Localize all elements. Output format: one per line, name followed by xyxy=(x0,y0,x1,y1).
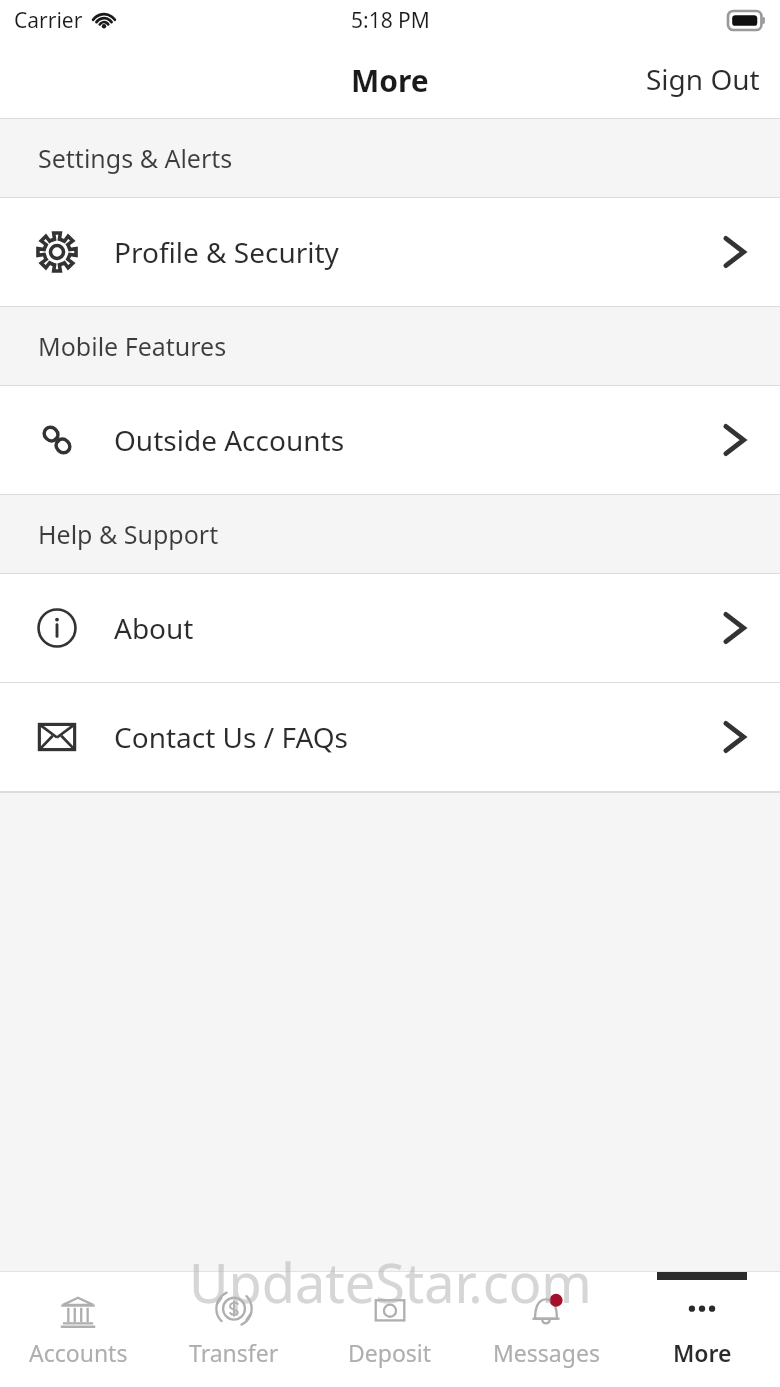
button[interactable]: Accounts xyxy=(0,1272,156,1387)
button[interactable]: Sign Out xyxy=(626,48,780,110)
button[interactable]: Deposit xyxy=(312,1272,468,1387)
staticText: Carrier xyxy=(14,6,83,35)
button[interactable]: Transfer xyxy=(156,1272,312,1387)
staticText: Messages xyxy=(493,1337,600,1368)
staticText: More xyxy=(351,60,429,101)
staticText: Help & Support xyxy=(38,517,219,551)
button[interactable]: Outside Accounts xyxy=(0,386,780,494)
staticText: 5:18 PM xyxy=(351,6,430,35)
staticText: Mobile Features xyxy=(38,329,227,363)
staticText: Outside Accounts xyxy=(114,421,345,459)
button[interactable]: More xyxy=(624,1272,780,1387)
staticText: UpdateStar.com xyxy=(189,1245,592,1319)
staticText: Deposit xyxy=(348,1337,432,1368)
staticText: Accounts xyxy=(29,1337,128,1368)
button[interactable]: Contact Us / FAQs xyxy=(0,683,780,791)
staticText: About xyxy=(114,609,194,647)
staticText: Settings & Alerts xyxy=(38,141,233,175)
staticText: Contact Us / FAQs xyxy=(114,718,349,756)
staticText: Profile & Security xyxy=(114,233,339,271)
staticText: More xyxy=(673,1337,732,1368)
button[interactable]: About xyxy=(0,574,780,682)
staticText: Transfer xyxy=(189,1337,279,1368)
staticText: Sign Out xyxy=(646,60,760,98)
button[interactable]: Profile & Security xyxy=(0,198,780,306)
button[interactable]: Messages xyxy=(468,1272,624,1387)
